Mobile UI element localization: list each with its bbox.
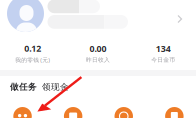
button[interactable]: 领现金 (42, 82, 69, 92)
staticText: 0.00 (89, 43, 106, 55)
button[interactable]: Profile detail (172, 10, 188, 28)
staticText: 134 (156, 43, 171, 55)
button[interactable]: News (165, 107, 184, 118)
button[interactable]: 做任务 (10, 82, 37, 92)
staticText: 我的零钱 (元) (15, 56, 50, 64)
button[interactable]: Sign in (64, 107, 82, 118)
button[interactable]: Invite friends (13, 107, 32, 118)
button[interactable]: Earn coins (114, 107, 133, 118)
staticText: 做任务 (10, 82, 37, 92)
staticText: 昨日收入 (86, 56, 110, 63)
staticText: 今日金币 (151, 56, 175, 63)
staticText: 0.12 (24, 42, 41, 54)
staticText: 领现金 (42, 82, 69, 92)
